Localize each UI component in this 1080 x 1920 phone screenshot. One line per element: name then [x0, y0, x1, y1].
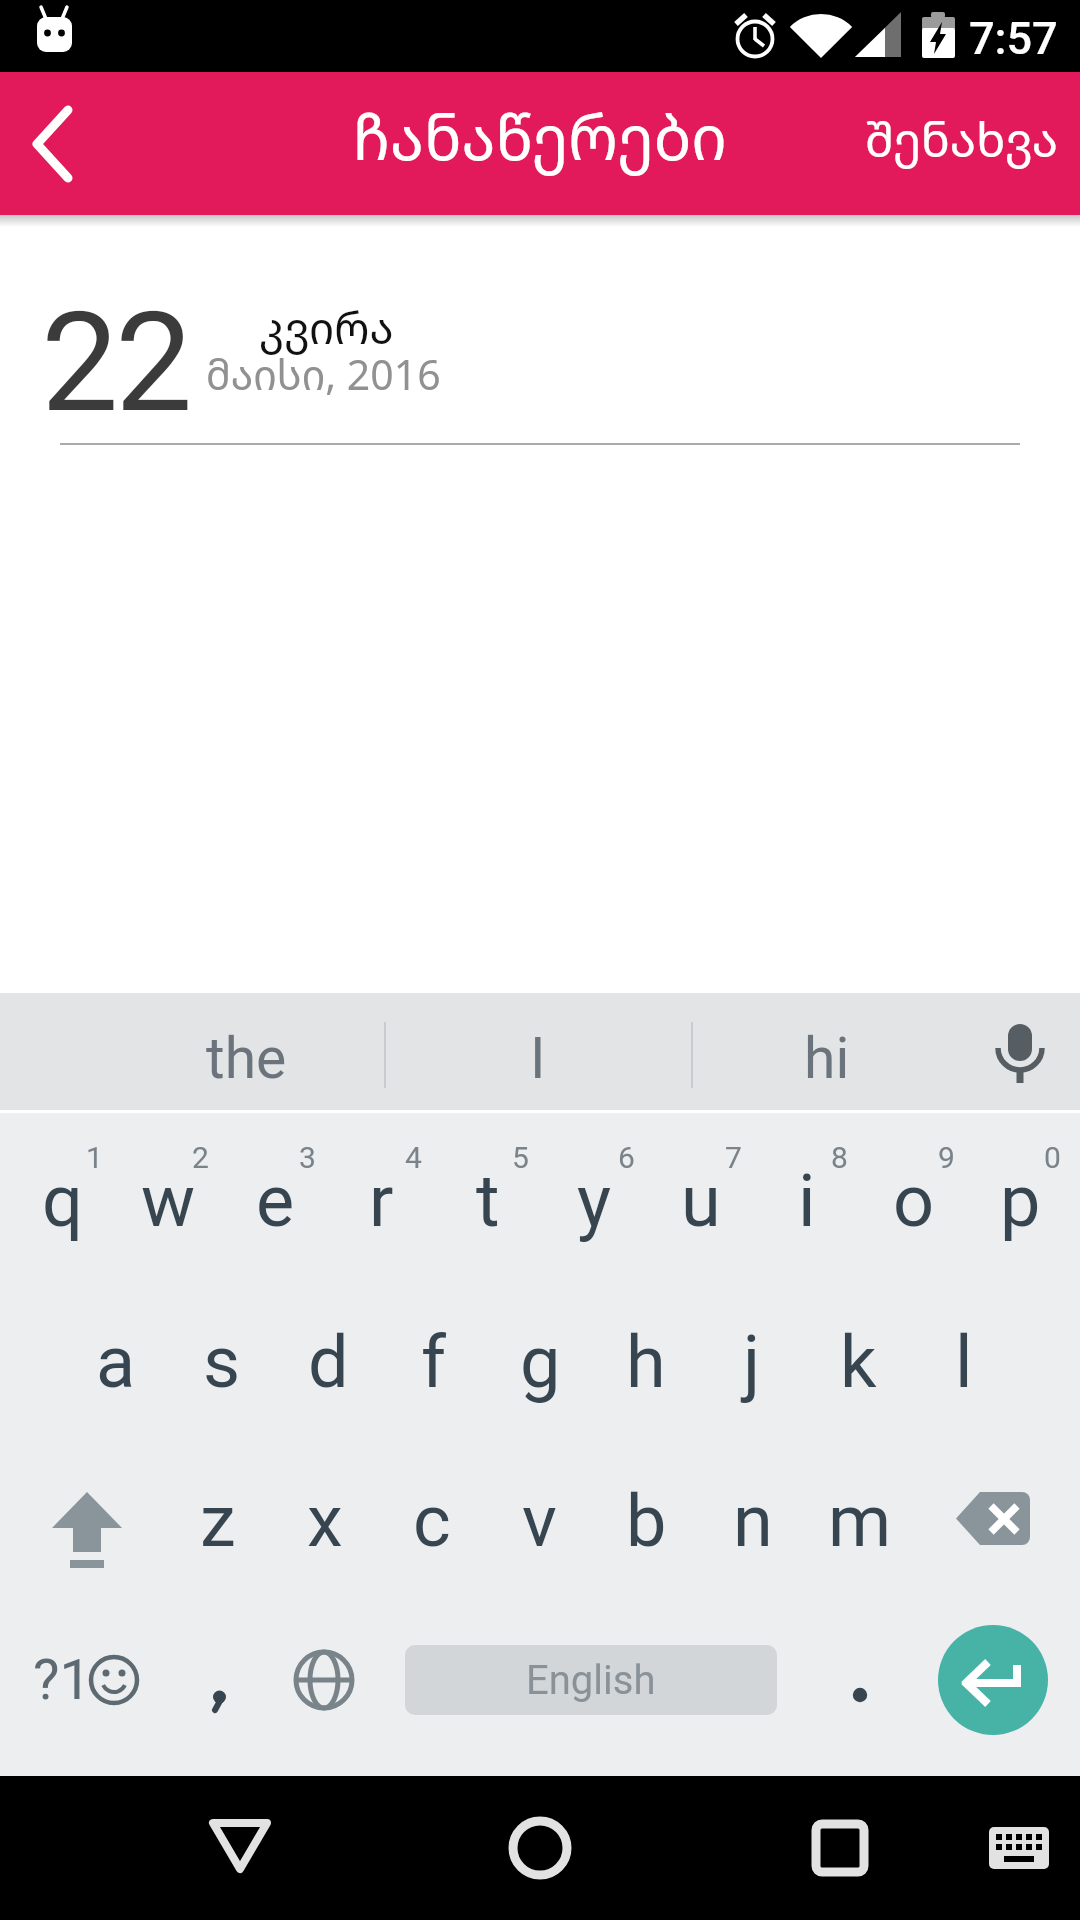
button[interactable]: i: [755, 1126, 859, 1276]
button[interactable]: k: [806, 1287, 910, 1437]
staticText: j: [743, 1320, 761, 1404]
staticText: v: [522, 1479, 557, 1563]
staticText: l: [955, 1320, 973, 1404]
staticText: u: [681, 1159, 721, 1243]
button[interactable]: [938, 1625, 1048, 1735]
button[interactable]: ?1: [10, 1605, 170, 1755]
button[interactable]: g: [488, 1287, 592, 1437]
button[interactable]: [25, 1445, 150, 1595]
button[interactable]: [930, 1445, 1055, 1595]
button[interactable]: n: [701, 1446, 805, 1596]
staticText: k: [840, 1320, 877, 1404]
button[interactable]: x: [273, 1446, 377, 1596]
staticText: h: [626, 1320, 666, 1404]
button[interactable]: y: [542, 1126, 646, 1276]
staticText: 2: [192, 1140, 209, 1175]
button[interactable]: v: [487, 1446, 591, 1596]
staticText: o: [893, 1159, 935, 1243]
staticText: 5: [512, 1140, 529, 1175]
staticText: 0: [1044, 1140, 1061, 1175]
staticText: m: [828, 1479, 892, 1563]
staticText: ჩანაწერები: [353, 94, 727, 178]
staticText: 22: [41, 282, 190, 444]
staticText: p: [1000, 1159, 1041, 1243]
staticText: a: [96, 1320, 136, 1404]
staticText: i: [798, 1159, 816, 1243]
button[interactable]: l: [912, 1287, 1016, 1437]
staticText: t: [476, 1159, 500, 1243]
staticText: f: [421, 1320, 447, 1404]
button[interactable]: hi: [707, 1013, 947, 1103]
staticText: English: [526, 1657, 656, 1704]
staticText: ?1: [33, 1647, 91, 1713]
button[interactable]: I: [418, 1013, 658, 1103]
staticText: 1: [86, 1140, 103, 1175]
button[interactable]: b: [594, 1446, 698, 1596]
button[interactable]: o: [862, 1126, 966, 1276]
button[interactable]: the: [126, 1013, 366, 1103]
button[interactable]: [975, 1007, 1065, 1097]
staticText: q: [42, 1159, 83, 1243]
button[interactable]: p: [968, 1126, 1072, 1276]
staticText: y: [577, 1159, 612, 1243]
staticText: e: [256, 1159, 295, 1243]
staticText: x: [307, 1479, 343, 1563]
button[interactable]: j: [700, 1287, 804, 1437]
button[interactable]: c: [380, 1446, 484, 1596]
button[interactable]: z: [166, 1446, 270, 1596]
staticText: შენახვა: [865, 106, 1059, 171]
staticText: b: [626, 1479, 667, 1563]
button[interactable]: [959, 1788, 1079, 1908]
button[interactable]: s: [170, 1287, 274, 1437]
staticText: hi: [804, 1025, 850, 1092]
staticText: 8: [831, 1140, 848, 1175]
staticText: the: [206, 1025, 287, 1092]
staticText: g: [520, 1320, 561, 1404]
button[interactable]: e: [223, 1126, 327, 1276]
staticText: კვირა: [259, 297, 394, 357]
button[interactable]: [264, 1620, 384, 1740]
button[interactable]: შენახვა: [832, 83, 1080, 193]
staticText: 9: [938, 1140, 955, 1175]
button[interactable]: t: [436, 1126, 540, 1276]
button[interactable]: English: [405, 1645, 777, 1715]
button[interactable]: w: [116, 1126, 220, 1276]
staticText: n: [733, 1479, 773, 1563]
staticText: s: [203, 1320, 241, 1404]
button[interactable]: m: [808, 1446, 912, 1596]
button[interactable]: [480, 1788, 600, 1908]
staticText: 6: [618, 1140, 635, 1175]
staticText: z: [200, 1479, 236, 1563]
staticText: 3: [299, 1140, 316, 1175]
staticText: მაისი, 2016: [206, 346, 441, 402]
staticText: I: [530, 1025, 546, 1092]
button[interactable]: d: [276, 1287, 380, 1437]
button[interactable]: q: [10, 1126, 114, 1276]
staticText: 7:57: [969, 12, 1058, 65]
button[interactable]: [780, 1788, 900, 1908]
staticText: c: [413, 1479, 451, 1563]
button[interactable]: a: [64, 1287, 168, 1437]
button[interactable]: f: [382, 1287, 486, 1437]
button[interactable]: [174, 1620, 264, 1740]
staticText: 4: [405, 1140, 422, 1175]
staticText: d: [308, 1320, 349, 1404]
button[interactable]: [0, 72, 110, 215]
button[interactable]: r: [329, 1126, 433, 1276]
staticText: w: [141, 1159, 196, 1243]
button[interactable]: h: [594, 1287, 698, 1437]
staticText: 7: [725, 1140, 742, 1175]
button[interactable]: [815, 1620, 905, 1740]
button[interactable]: u: [649, 1126, 753, 1276]
staticText: r: [369, 1159, 394, 1243]
button[interactable]: [180, 1788, 300, 1908]
